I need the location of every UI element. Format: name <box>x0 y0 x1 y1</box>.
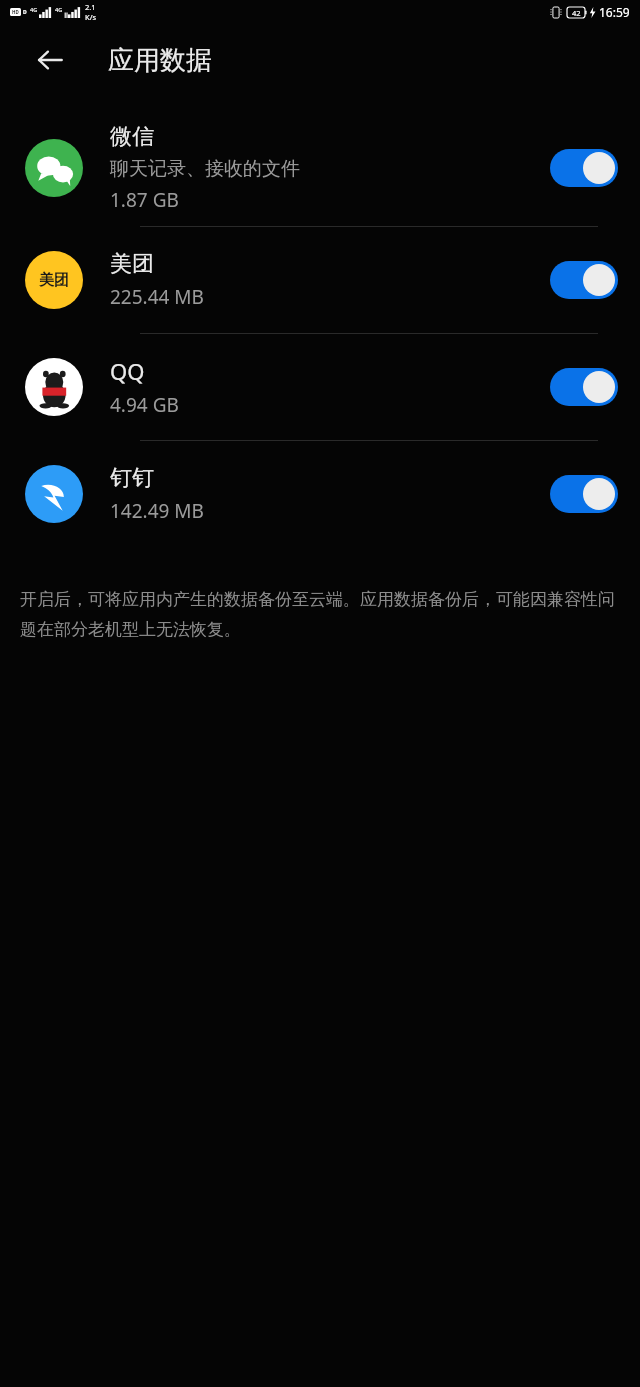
staticText: D <box>23 9 27 16</box>
staticText: 4.94 GB <box>110 392 179 418</box>
staticText: 42 <box>572 8 581 18</box>
button[interactable]: QQ <box>0 334 640 440</box>
staticText: QQ <box>110 356 145 386</box>
staticText: 钉钉 <box>110 464 154 492</box>
button[interactable]: Back <box>28 38 72 82</box>
staticText: 美团 <box>110 250 154 278</box>
button[interactable]: 钉钉 <box>0 441 640 547</box>
button[interactable]: 微信 <box>0 110 640 226</box>
staticText: 16:59 <box>599 4 630 20</box>
staticText: 开启后，可将应用内产生的数据备份至云端。应用数据备份后，可能因兼容性问题在部分老… <box>20 589 618 640</box>
staticText: 应用数据 <box>108 44 212 77</box>
staticText: 225.44 MB <box>110 284 204 310</box>
staticText: HD <box>12 9 19 15</box>
staticText: 4G <box>30 6 38 13</box>
staticText: 微信 <box>110 123 154 151</box>
staticText: 4G <box>55 6 63 13</box>
button[interactable]: Toggle backup <box>550 475 618 513</box>
staticText: 1.87 GB <box>110 187 179 213</box>
staticText: K/s <box>85 12 97 22</box>
button[interactable]: Toggle backup <box>550 149 618 187</box>
staticText: 2.1 <box>85 2 96 12</box>
button[interactable]: Toggle backup <box>550 261 618 299</box>
button[interactable]: Toggle backup <box>550 368 618 406</box>
staticText: 美团 <box>39 271 69 290</box>
staticText: 聊天记录、接收的文件 <box>110 157 300 181</box>
button[interactable]: 美团 <box>0 227 640 333</box>
staticText: 142.49 MB <box>110 498 204 524</box>
